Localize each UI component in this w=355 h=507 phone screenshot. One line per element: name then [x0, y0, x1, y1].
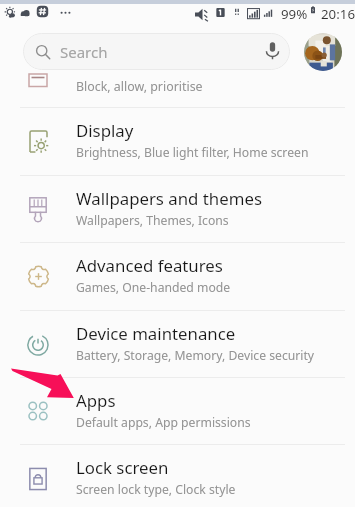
button[interactable]: Wallpapers and themes: [0, 176, 355, 243]
staticText: Brightness, Blue light filter, Home scre…: [76, 144, 309, 161]
staticText: Advanced features: [76, 254, 223, 277]
button[interactable]: Device maintenance: [0, 311, 355, 378]
button[interactable]: Search: [23, 33, 290, 70]
staticText: Display: [76, 119, 134, 142]
button[interactable]: Lock screen: [0, 445, 355, 507]
staticText: Wallpapers and themes: [76, 187, 262, 210]
staticText: Games, One-handed mode: [76, 279, 231, 296]
button[interactable]: Profile: [304, 33, 342, 71]
staticText: Block, allow, prioritise: [76, 78, 203, 95]
staticText: 99%: [281, 5, 308, 23]
staticText: Default apps, App permissions: [76, 414, 251, 431]
staticText: Battery, Storage, Memory, Device securit…: [76, 347, 315, 364]
staticText: Apps: [76, 389, 116, 412]
staticText: Lock screen: [76, 456, 169, 479]
staticText: Device maintenance: [76, 322, 236, 345]
button[interactable]: Voice search: [263, 41, 282, 60]
button[interactable]: Block, allow, prioritise: [0, 72, 355, 107]
staticText: 20:16: [321, 5, 355, 23]
button[interactable]: Apps: [0, 378, 355, 445]
staticText: Search: [60, 42, 108, 62]
button[interactable]: Advanced features: [0, 243, 355, 310]
staticText: Wallpapers, Themes, Icons: [76, 212, 229, 229]
staticText: Screen lock type, Clock style: [76, 481, 236, 498]
button[interactable]: Display: [0, 108, 355, 175]
